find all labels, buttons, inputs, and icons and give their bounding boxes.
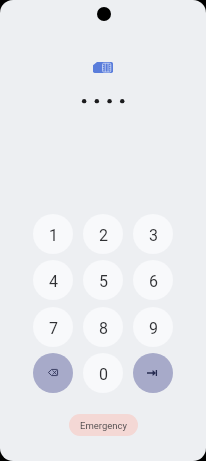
staticText: 9 <box>149 319 158 338</box>
staticText: 3 <box>149 226 158 245</box>
button[interactable]: 5 <box>83 260 123 300</box>
staticText: 6 <box>149 272 158 291</box>
staticText: 4 <box>49 272 58 291</box>
button[interactable]: 6 <box>133 260 173 300</box>
button[interactable]: Backspace <box>33 353 73 393</box>
button[interactable]: 2 <box>83 214 123 254</box>
staticText: 5 <box>99 272 108 291</box>
button[interactable]: 0 <box>83 353 123 393</box>
staticText: 2 <box>99 226 108 245</box>
button[interactable]: 3 <box>133 214 173 254</box>
staticText: Emergency <box>80 420 127 431</box>
staticText: 7 <box>49 319 58 338</box>
button[interactable]: 7 <box>33 307 73 347</box>
other: SIM card <box>93 62 113 73</box>
staticText: 0 <box>99 365 108 384</box>
staticText: 8 <box>99 319 108 338</box>
button[interactable]: 4 <box>33 260 73 300</box>
button[interactable]: 8 <box>83 307 123 347</box>
button[interactable]: Enter <box>133 353 173 393</box>
button[interactable]: 1 <box>33 214 73 254</box>
staticText: 1 <box>49 226 58 245</box>
button[interactable]: Emergency <box>69 414 138 436</box>
button[interactable]: 9 <box>133 307 173 347</box>
